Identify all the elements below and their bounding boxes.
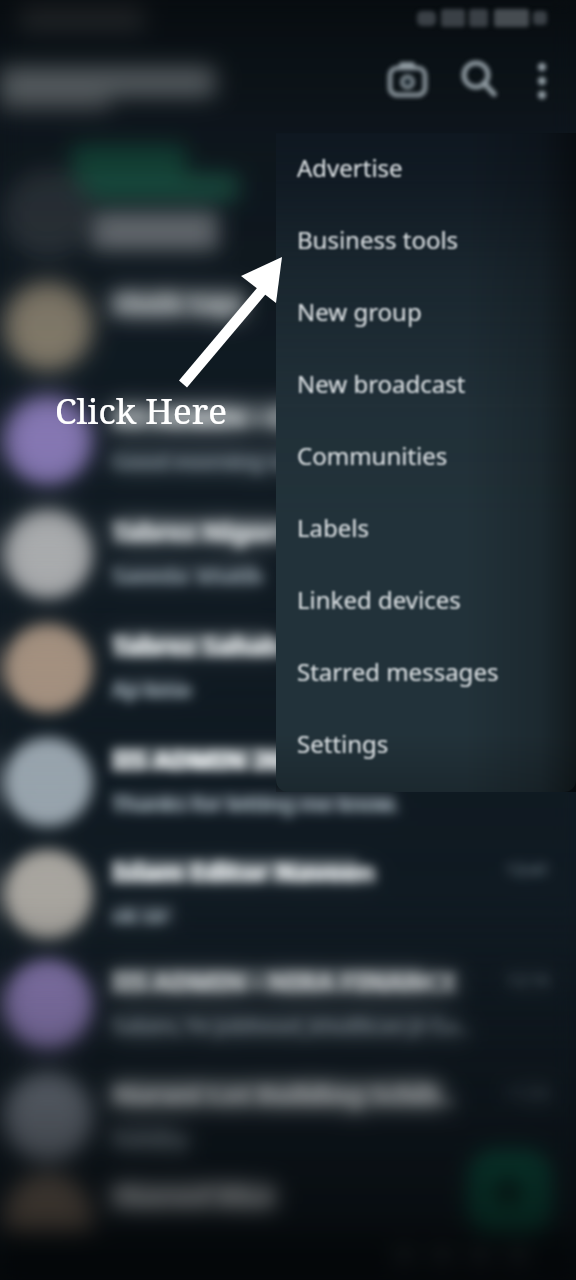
button[interactable]: Labels bbox=[276, 491, 576, 563]
staticText: Ap kese bbox=[111, 674, 192, 704]
staticText: ok sir bbox=[112, 900, 169, 930]
staticText: 12:16 bbox=[506, 968, 550, 991]
staticText: IIS ADMIN - NIRA FINANCE bbox=[112, 964, 457, 999]
staticText: Good morning sir 0664 bbox=[113, 446, 352, 476]
staticText: IIS ADMIN 268 bbox=[111, 742, 297, 777]
staticText: New group bbox=[297, 295, 422, 328]
staticText: Thanks for letting me know. bbox=[113, 788, 401, 818]
staticText: Good morning sir 0664 bbox=[111, 446, 350, 476]
staticText: Saeeda khatib bbox=[113, 560, 265, 590]
staticText: Nurani Lot Building Schib.. bbox=[113, 1077, 456, 1112]
staticText: Thanks for letting me know. bbox=[112, 788, 400, 818]
staticText: Business tools bbox=[297, 223, 459, 256]
staticText: IIS ADMIN 268 bbox=[113, 742, 299, 777]
button[interactable]: New broadcast bbox=[276, 347, 576, 419]
staticText: Tabrez Sahab bbox=[112, 628, 282, 663]
staticText: New broadcast bbox=[297, 367, 466, 400]
staticText: Sunday bbox=[112, 1123, 189, 1153]
staticText: Nurani Lot Building Schib.. bbox=[113, 1077, 456, 1112]
staticText: Islam Editor Naveen bbox=[113, 854, 376, 889]
staticText: Salam, Ye jobhead_khulfican ji~Sa.. bbox=[111, 1010, 470, 1040]
staticText: Islam Editor Naveen bbox=[112, 854, 375, 889]
staticText: 13:41 bbox=[506, 858, 550, 881]
staticText: Sheik Sapi bbox=[113, 286, 245, 321]
staticText: Sunday bbox=[113, 1123, 190, 1153]
staticText: Sheik Sapi bbox=[113, 286, 245, 321]
staticText: IIS ADMIN - CRM bbox=[112, 400, 327, 435]
staticText: Nurani Lot Building Schib.. bbox=[111, 1077, 454, 1112]
staticText: Sunday bbox=[113, 1123, 190, 1153]
button[interactable]: Business tools bbox=[276, 203, 576, 275]
button[interactable]: Settings bbox=[276, 707, 576, 779]
staticText: Tabrez Sahab bbox=[111, 628, 281, 663]
button[interactable]: Advertise bbox=[276, 131, 576, 203]
staticText: Salam, Ye jobhead_khulfican ji~Sa.. bbox=[113, 1010, 472, 1040]
staticText: Tabrez Nigori bbox=[111, 514, 283, 549]
staticText: IIS ADMIN 268 bbox=[112, 742, 298, 777]
staticText: Saeeda khatib bbox=[112, 560, 264, 590]
staticText: Thanks for letting me know. bbox=[111, 788, 399, 818]
staticText: Salam, Ye jobhead_khulfican ji~Sa.. bbox=[112, 1010, 471, 1040]
staticText: Ap kese bbox=[111, 674, 192, 704]
staticText: Sunday bbox=[111, 1123, 188, 1153]
staticText: Sunday bbox=[111, 1123, 188, 1153]
staticText: Saeeda khatib bbox=[111, 560, 263, 590]
staticText: IIS ADMIN - CRM bbox=[113, 400, 328, 435]
staticText: Tabrez Sahab bbox=[113, 628, 283, 663]
staticText: Labels bbox=[297, 511, 370, 544]
staticText: Tabrez Nigori bbox=[113, 514, 285, 549]
staticText: Good morning sir 0664 bbox=[112, 446, 351, 476]
staticText: Ap kese bbox=[113, 674, 194, 704]
staticText: IIS ADMIN 268 bbox=[111, 742, 297, 777]
staticText: IIS ADMIN - NIRA FINANCE bbox=[113, 964, 458, 999]
staticText: IIS ADMIN - NIRA FINANCE bbox=[111, 964, 456, 999]
button[interactable]: New group bbox=[276, 275, 576, 347]
staticText: ok sir bbox=[113, 900, 170, 930]
button[interactable]: Linked devices bbox=[276, 563, 576, 635]
staticText: Shareef Bhai bbox=[113, 1179, 277, 1214]
staticText: Islam Editor Naveen bbox=[111, 854, 374, 889]
staticText: ok sir bbox=[111, 900, 168, 930]
staticText: Good morning sir 0664 bbox=[113, 446, 352, 476]
staticText: Linked devices bbox=[297, 583, 461, 616]
staticText: ok sir bbox=[112, 900, 169, 930]
staticText: IIS ADMIN - CRM bbox=[113, 400, 328, 435]
button[interactable]: Starred messages bbox=[276, 635, 576, 707]
staticText: IIS ADMIN 268 bbox=[112, 742, 298, 777]
staticText: Saeeda khatib bbox=[113, 560, 265, 590]
staticText: IIS ADMIN - CRM bbox=[111, 400, 326, 435]
staticText: Nurani Lot Building Schib.. bbox=[112, 1077, 455, 1112]
staticText: Ap kese bbox=[112, 674, 193, 704]
staticText: Nurani Lot Building Schib.. bbox=[112, 1077, 455, 1112]
staticText: Click Here bbox=[55, 387, 228, 435]
staticText: Shareef Bhai bbox=[112, 1179, 276, 1214]
staticText: Thanks for letting me know. bbox=[111, 788, 399, 818]
staticText: 13:41 bbox=[506, 858, 550, 881]
staticText: Thanks for letting me know. bbox=[112, 788, 400, 818]
staticText: Tabrez Sahab bbox=[111, 628, 281, 663]
staticText: IIS ADMIN - CRM bbox=[112, 400, 327, 435]
staticText: Thanks for letting me know. bbox=[113, 788, 401, 818]
staticText: Good morning sir 0664 bbox=[112, 446, 351, 476]
staticText: Sheik Sapi bbox=[111, 286, 243, 321]
staticText: Ap kese bbox=[112, 674, 193, 704]
staticText: IIS ADMIN - NIRA FINANCE bbox=[113, 964, 458, 999]
staticText: Salam, Ye jobhead_khulfican ji~Sa.. bbox=[112, 1010, 471, 1040]
staticText: Nurani Lot Building Schib.. bbox=[111, 1077, 454, 1112]
staticText: IIS ADMIN - NIRA FINANCE bbox=[112, 964, 457, 999]
staticText: Good morning sir 0664 bbox=[111, 446, 350, 476]
staticText: Tabrez Nigori bbox=[111, 514, 283, 549]
staticText: Communities bbox=[297, 439, 448, 472]
button[interactable]: Communities bbox=[276, 419, 576, 491]
staticText: Saeeda khatib bbox=[112, 560, 264, 590]
